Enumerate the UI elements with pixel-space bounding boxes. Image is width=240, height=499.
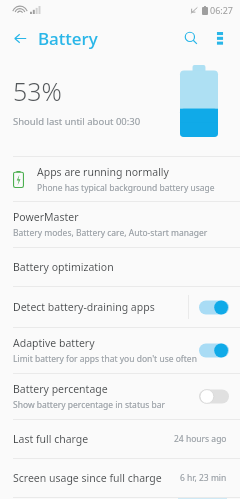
staticText: Screen usage since full charge	[13, 471, 162, 485]
staticText: 6 hr, 23 min	[180, 472, 227, 484]
staticText: 24 hours ago	[174, 433, 227, 445]
button[interactable]: PowerMaster	[0, 202, 240, 247]
button[interactable]: Battery optimization	[0, 248, 240, 286]
staticText: Phone has typical background battery usa…	[37, 182, 215, 194]
staticText: Last full charge	[13, 432, 89, 446]
button[interactable]: Back	[6, 24, 34, 52]
button[interactable]: Adaptive battery	[0, 328, 240, 373]
button[interactable]: Screen usage since full charge	[0, 459, 240, 497]
button[interactable]: Detect battery-draining apps	[0, 287, 240, 327]
staticText: 53%	[13, 74, 62, 108]
button[interactable]: On	[199, 300, 229, 315]
button[interactable]: Battery percentage	[0, 374, 240, 419]
staticText: Should last until about 00:30	[13, 115, 141, 128]
staticText: Battery	[38, 27, 98, 50]
staticText: Battery percentage	[13, 382, 108, 396]
staticText: Limit battery for apps that you don't us…	[13, 353, 197, 365]
staticText: Adaptive battery	[13, 336, 95, 350]
button[interactable]: Off	[199, 389, 229, 404]
button[interactable]: On	[199, 343, 229, 358]
staticText: Apps are running normally	[37, 165, 169, 179]
staticText: 06:27	[210, 4, 234, 16]
button[interactable]: Apps are running normally	[0, 157, 240, 201]
staticText: Battery modes, Battery care, Auto-start …	[13, 227, 208, 239]
staticText: Detect battery-draining apps	[13, 300, 155, 314]
staticText: PowerMaster	[13, 210, 79, 224]
staticText: Battery optimization	[13, 260, 114, 274]
button[interactable]: Battery usage since full charge	[0, 498, 240, 499]
button[interactable]: More options	[206, 24, 234, 52]
button[interactable]: Search	[176, 23, 206, 53]
staticText: Show battery percentage in status bar	[13, 399, 165, 411]
button[interactable]: Last full charge	[0, 420, 240, 458]
